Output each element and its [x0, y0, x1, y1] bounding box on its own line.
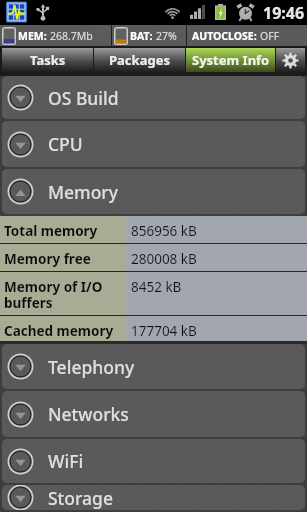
staticText: Packages [109, 51, 170, 69]
staticText: Memory [48, 180, 119, 204]
button[interactable]: Telephony [2, 344, 305, 389]
staticText: Memory free [4, 250, 91, 268]
button[interactable]: System Info [186, 48, 275, 72]
staticText: 856956 kB [131, 222, 197, 240]
button[interactable]: CPU [2, 121, 305, 167]
staticText: BAT: [130, 29, 153, 43]
button[interactable]: WiFi [2, 439, 305, 483]
staticText: 268.7Mb [50, 29, 93, 43]
staticText: CPU [48, 132, 83, 156]
staticText: WiFi [48, 449, 84, 473]
staticText: 27% [156, 29, 177, 43]
staticText: OFF [260, 29, 280, 43]
staticText: MEM: [18, 29, 47, 43]
button[interactable]: Storage [2, 485, 305, 510]
staticText: System Info [192, 51, 270, 69]
button[interactable]: Memory [2, 169, 305, 214]
staticText: Total memory [4, 222, 98, 240]
staticText: OS Build [48, 86, 119, 110]
button[interactable]: Tasks [2, 48, 93, 72]
staticText: AUTOCLOSE: [192, 29, 257, 43]
button[interactable]: Networks [2, 391, 305, 437]
staticText: 19:46 [263, 2, 305, 24]
staticText: Storage [48, 486, 113, 510]
staticText: 8452 kB [131, 278, 182, 296]
button[interactable]: OS Build [2, 76, 305, 119]
button[interactable]: Settings [276, 48, 305, 72]
staticText: Telephony [48, 355, 135, 379]
staticText: Networks [48, 402, 129, 426]
staticText: Cached memory [4, 322, 114, 340]
staticText: 280008 kB [131, 250, 197, 268]
button[interactable]: Packages [94, 48, 185, 72]
staticText: 177704 kB [131, 322, 197, 340]
staticText: Memory of I/O buffers [4, 278, 103, 312]
staticText: Tasks [30, 51, 66, 69]
